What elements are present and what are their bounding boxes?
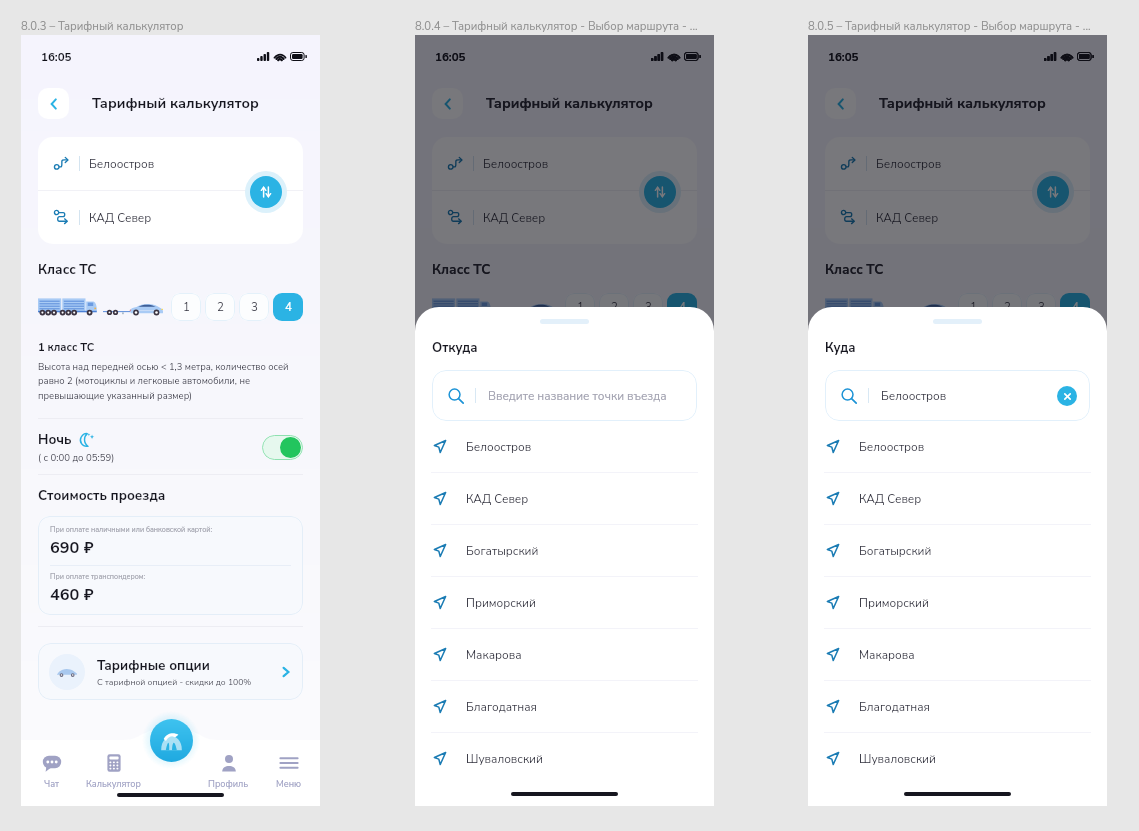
button[interactable]: КАД Север [415,473,714,524]
button[interactable]: Приморский [415,577,714,628]
button[interactable]: Благодатная [415,681,714,732]
button[interactable]: Приморский [808,577,1107,628]
button[interactable]: Белоостров [38,137,303,190]
button[interactable]: Назад [38,88,69,119]
button[interactable]: Назад [825,88,856,119]
button[interactable]: Макарова [808,629,1107,680]
staticText: Приморский [859,595,929,611]
button[interactable]: Белоостров [432,137,697,190]
button[interactable]: Чат [42,753,62,790]
button[interactable]: Шуваловский [808,733,1107,784]
staticText: С тарифной опцией - скидки до 100% [97,676,252,688]
staticText: 1 класс ТС [38,340,95,355]
button[interactable]: Очистить [1057,386,1077,406]
button[interactable]: Благодатная [808,681,1107,732]
staticText: Класс ТС [825,260,884,278]
staticText: 16:05 [435,49,466,65]
staticText: 4 [285,299,292,315]
button[interactable]: Белоостров [415,421,714,472]
button[interactable]: 3 [239,293,269,321]
staticText: Белоостров [89,156,155,172]
staticText: Приморский [466,595,536,611]
staticText: Тарифный калькулятор [486,93,653,113]
staticText: Калькулятор [86,778,141,790]
button[interactable]: Калькулятор [86,753,141,790]
staticText: 2 [611,299,618,315]
button[interactable]: КАД Север [825,191,1090,244]
staticText: 16:05 [41,49,72,65]
staticText: Класс ТС [432,260,491,278]
staticText: 460 ₽ [50,584,94,606]
staticText: Куда [825,339,856,357]
button[interactable]: 2 [992,293,1022,321]
staticText: КАД Север [483,210,546,226]
staticText: 8.0.4 – Тарифный калькулятор - Выбор мар… [415,19,698,34]
staticText: Тарифный калькулятор [486,93,653,113]
staticText: ( с 0:00 до 05:59) [38,451,115,464]
button[interactable]: 1 [958,293,988,321]
button[interactable]: Профиль [208,753,249,790]
button[interactable]: Меню [276,753,302,790]
button[interactable]: Поменять местами [250,176,282,208]
staticText: Белоостров [859,439,925,455]
staticText: 1 [577,299,584,315]
staticText: 3 [1038,299,1045,315]
staticText: 3 [645,299,652,315]
staticText: 4 [679,299,686,315]
staticText: Богатырский [466,543,539,559]
button[interactable]: Главная [150,719,193,762]
button[interactable]: Поменять местами [644,176,676,208]
staticText: Откуда [432,339,478,357]
button[interactable]: Ночной тариф [262,435,303,460]
button[interactable]: КАД Север [432,191,697,244]
staticText: 8.0.5 – Тарифный калькулятор - Выбор мар… [808,19,1091,34]
staticText: Меню [276,778,302,790]
button[interactable]: Тарифные опции [38,643,303,700]
button[interactable]: Назад [432,88,463,119]
button[interactable]: 1 [565,293,595,321]
staticText: При оплате наличными или банковской карт… [50,525,213,535]
staticText: Шуваловский [859,751,936,767]
staticText: 2 [1004,299,1011,315]
staticText: КАД Север [859,491,922,507]
staticText: Белоостров [876,156,942,172]
button[interactable]: Белоостров [825,370,1090,421]
button[interactable]: Белоостров [808,421,1107,472]
staticText: Класс ТС [432,260,491,278]
staticText: КАД Север [466,491,529,507]
staticText: Ночь [38,430,72,448]
button[interactable]: 4 [1060,293,1090,321]
button[interactable]: 4 [273,293,303,321]
button[interactable]: Поменять местами [1037,176,1069,208]
staticText: КАД Север [876,210,939,226]
button[interactable]: 3 [1026,293,1056,321]
button[interactable]: Макарова [415,629,714,680]
button[interactable]: 2 [599,293,629,321]
staticText: 2 [217,299,224,315]
staticText: 16:05 [828,49,859,65]
staticText: 16:05 [435,49,466,65]
button[interactable]: Белоостров [825,137,1090,190]
staticText: Шуваловский [466,751,543,767]
button[interactable]: Богатырский [808,525,1107,576]
staticText: 1 [183,299,190,315]
button[interactable]: Шуваловский [415,733,714,784]
button[interactable]: 1 [171,293,201,321]
button[interactable]: 2 [205,293,235,321]
staticText: Благодатная [859,699,930,715]
button[interactable]: Богатырский [415,525,714,576]
staticText: 4 [1072,299,1079,315]
staticText: Профиль [208,778,249,790]
staticText: Класс ТС [825,260,884,278]
staticText: Макарова [466,647,522,663]
button[interactable]: КАД Север [808,473,1107,524]
staticText: Тарифные опции [97,656,210,674]
button[interactable]: 4 [667,293,697,321]
staticText: Введите название точки въезда [488,388,667,404]
staticText: При оплате транспондером: [50,572,146,582]
button[interactable]: КАД Север [38,191,303,244]
staticText: 3 [251,299,258,315]
staticText: 690 ₽ [50,537,94,559]
button[interactable]: Введите название точки въезда [432,370,697,421]
button[interactable]: 3 [633,293,663,321]
